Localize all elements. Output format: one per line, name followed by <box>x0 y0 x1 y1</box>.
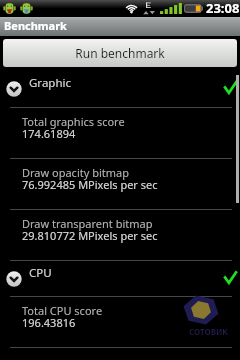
staticText: Total CPU score <box>22 303 103 318</box>
other: Collapse section <box>6 81 22 97</box>
other: Passed <box>224 271 237 283</box>
staticText: Run benchmark <box>75 45 165 61</box>
staticText: 29.810772 MPixels per sec <box>22 228 158 243</box>
button[interactable]: Total CPU score <box>0 297 240 347</box>
staticText: 174.61894 <box>22 126 76 141</box>
staticText: Draw opacity bitmap <box>22 165 129 180</box>
button[interactable]: Run benchmark <box>3 39 237 67</box>
other: Passed <box>224 81 237 93</box>
staticText: Total graphics score <box>22 114 125 129</box>
staticText: 76.992485 MPixels per sec <box>22 177 158 192</box>
other: Collapse section <box>6 271 22 287</box>
staticText: Graphic <box>29 75 72 91</box>
staticText: 23:08 <box>206 0 240 16</box>
button[interactable]: Collapse section <box>0 70 240 107</box>
staticText: СОТОВИК <box>189 326 228 337</box>
staticText: Benchmark <box>4 18 67 33</box>
button[interactable]: Draw opacity bitmap <box>0 159 240 209</box>
button[interactable]: Total graphics score <box>0 108 240 158</box>
button[interactable]: Collapse section <box>0 261 240 296</box>
staticText: CPU <box>29 265 52 281</box>
staticText: Draw transparent bitmap <box>22 216 153 231</box>
staticText: 196.43816 <box>22 315 76 330</box>
button[interactable]: Draw transparent bitmap <box>0 210 240 260</box>
